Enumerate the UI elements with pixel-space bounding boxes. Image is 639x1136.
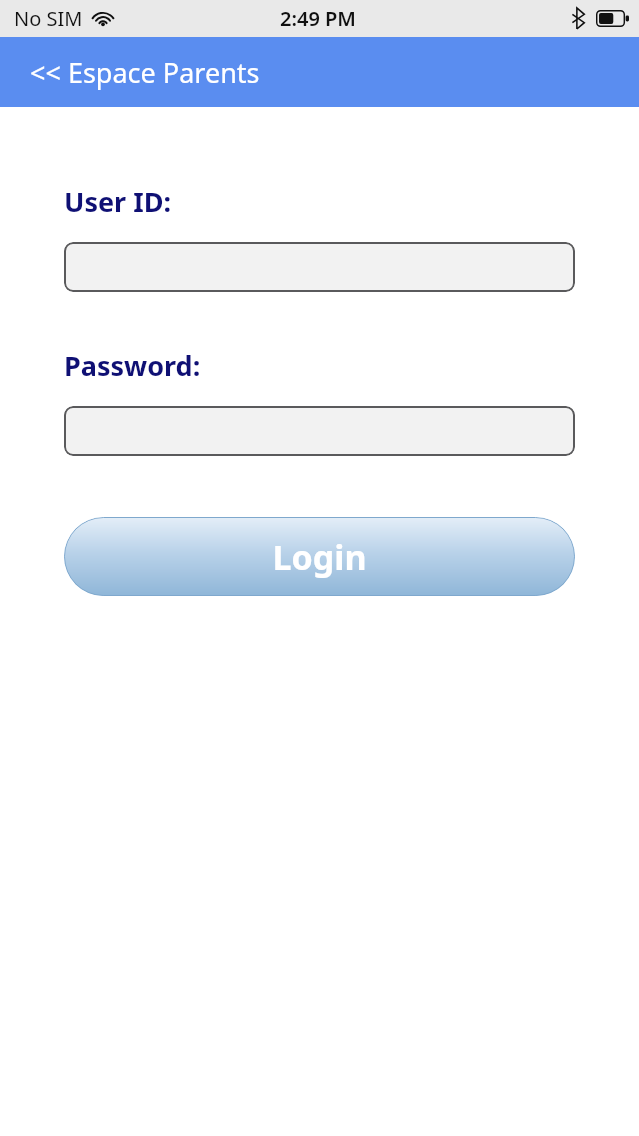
button[interactable]: Login (64, 517, 575, 596)
button[interactable] (64, 242, 575, 292)
button[interactable]: << Espace Parents (0, 48, 276, 97)
staticText: No SIM (14, 5, 83, 32)
staticText: User ID: (64, 183, 172, 220)
button[interactable] (64, 406, 575, 456)
staticText: Password: (64, 347, 201, 384)
staticText: << Espace Parents (30, 54, 260, 91)
staticText: 2:49 PM (280, 5, 356, 32)
staticText: Login (272, 534, 367, 580)
